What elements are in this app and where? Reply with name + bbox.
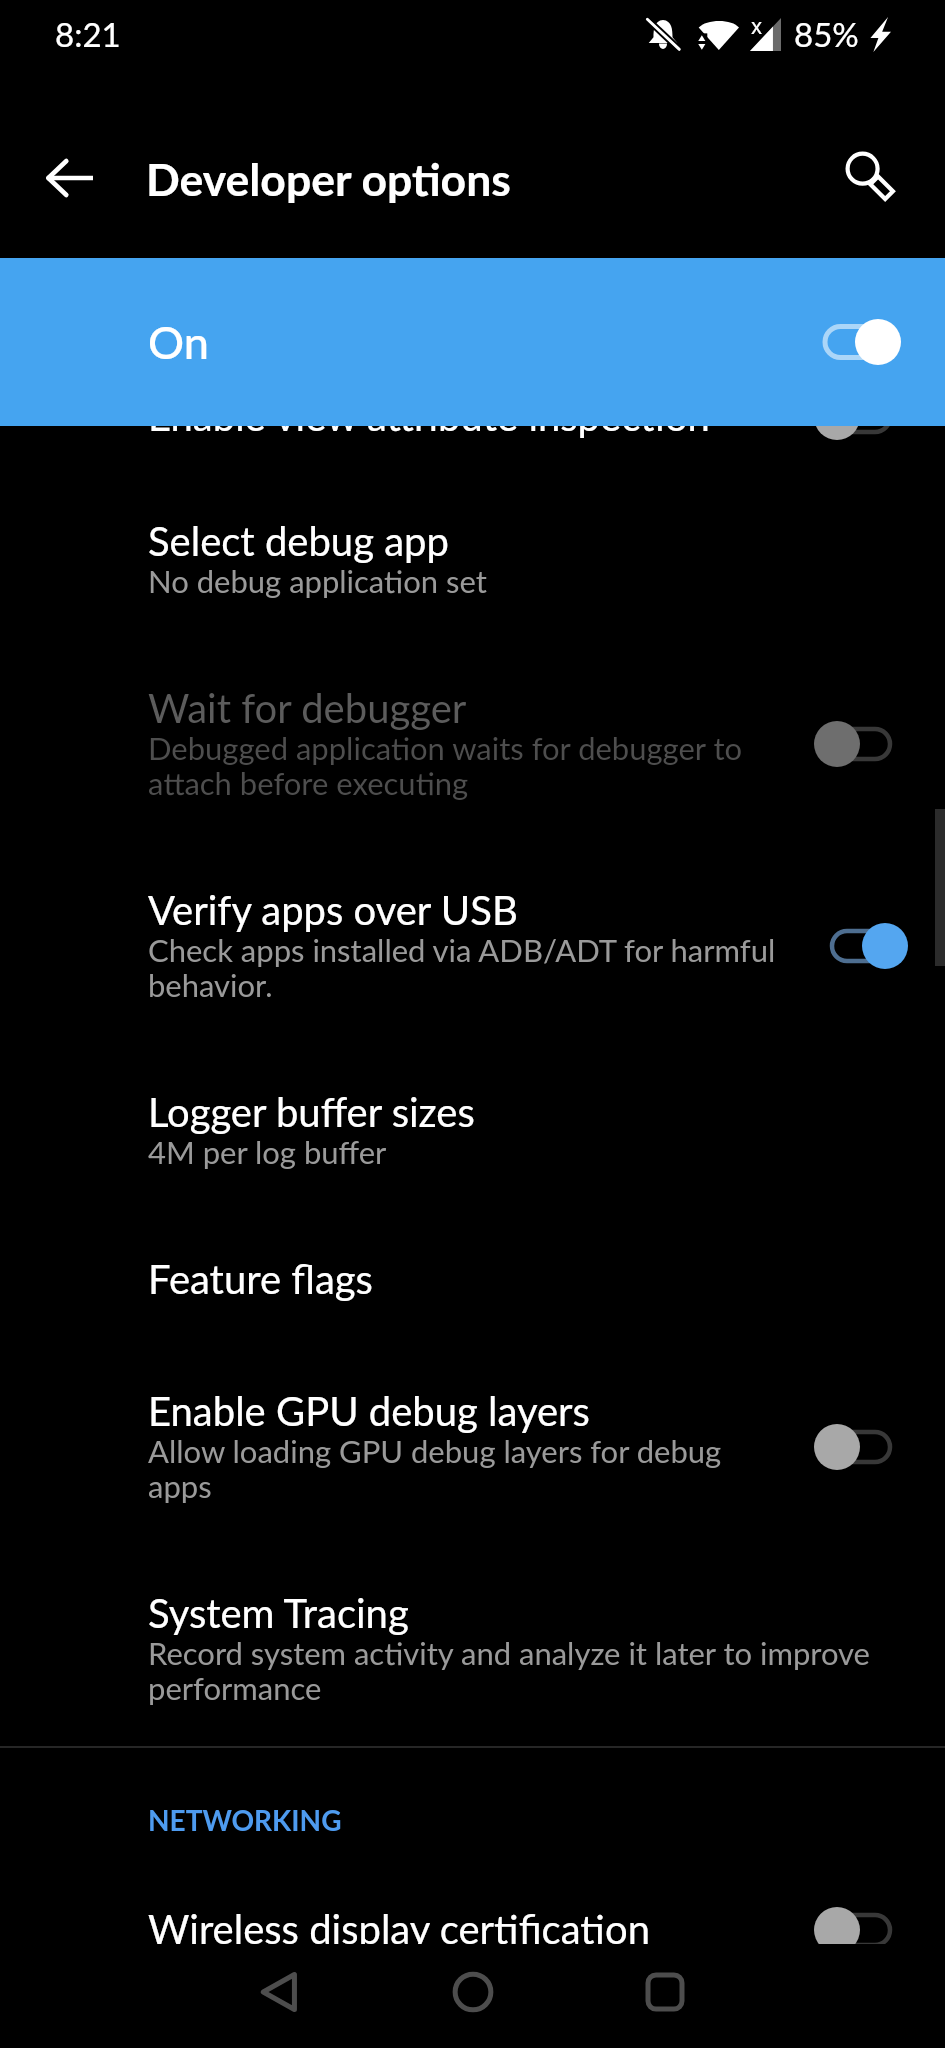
button[interactable]: Off — [790, 709, 945, 779]
staticText: On — [148, 315, 209, 369]
staticText: 85% — [794, 14, 859, 54]
staticText: Record system activity and analyze it la… — [148, 1636, 900, 1706]
button[interactable]: On — [0, 258, 945, 426]
button[interactable]: Recent apps — [617, 1944, 713, 2040]
button[interactable]: Search — [827, 134, 915, 222]
button[interactable]: Off — [790, 382, 945, 452]
button[interactable]: Off — [790, 1895, 945, 1965]
staticText: Wireless display certification — [148, 1908, 650, 1952]
staticText: 4M per log buffer — [148, 1135, 387, 1170]
staticText: Wait for debugger — [148, 687, 467, 731]
button[interactable]: Select debug app — [0, 476, 945, 643]
button[interactable]: On — [790, 911, 945, 981]
staticText: Enable view attribute inspection — [148, 395, 710, 439]
button[interactable]: Back — [232, 1944, 328, 2040]
staticText: Developer options — [146, 152, 511, 205]
button[interactable]: Wait for debugger — [0, 643, 945, 845]
button[interactable]: System Tracing — [0, 1548, 945, 1750]
staticText: Feature flags — [148, 1258, 373, 1302]
staticText: Select debug app — [148, 520, 449, 564]
button[interactable]: Verify apps over USB — [0, 845, 945, 1047]
button[interactable]: Wireless display certification — [0, 1851, 945, 2009]
staticText: Verify apps over USB — [148, 889, 518, 933]
staticText: System Tracing — [148, 1592, 409, 1636]
button[interactable]: Navigate up — [26, 134, 114, 222]
staticText: Allow loading GPU debug layers for debug… — [148, 1434, 778, 1504]
button[interactable]: Feature flags — [0, 1214, 945, 1346]
button[interactable]: Off — [790, 1412, 945, 1482]
button[interactable]: Logger buffer sizes — [0, 1047, 945, 1214]
staticText: Debugged application waits for debugger … — [148, 731, 778, 801]
staticText: x — [751, 12, 763, 41]
button[interactable]: Enable GPU debug layers — [0, 1346, 945, 1548]
button[interactable]: Enable view attribute inspection — [0, 338, 945, 496]
staticText: Check apps installed via ADB/ADT for har… — [148, 933, 778, 1003]
staticText: Enable GPU debug layers — [148, 1390, 590, 1434]
button[interactable]: Home — [425, 1944, 521, 2040]
staticText: NETWORKING — [148, 1803, 342, 1837]
staticText: 8:21 — [55, 14, 121, 54]
staticText: Logger buffer sizes — [148, 1091, 475, 1135]
staticText: No debug application set — [148, 564, 487, 599]
